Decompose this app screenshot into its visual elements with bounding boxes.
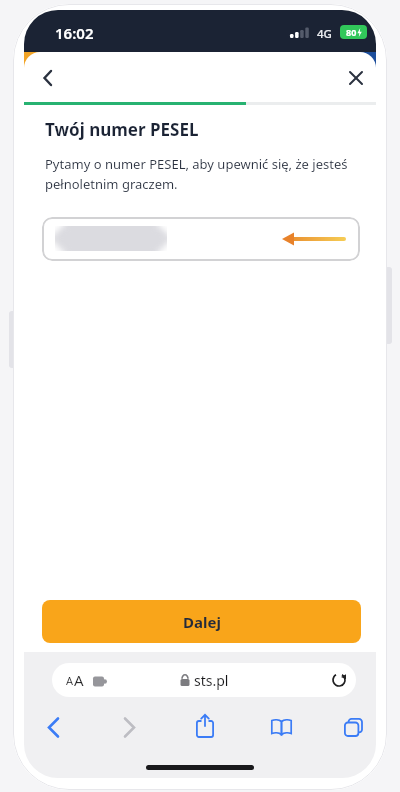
button[interactable]: Dalej xyxy=(42,600,361,643)
staticText: sts.pl xyxy=(194,671,229,690)
button[interactable] xyxy=(340,714,366,740)
button[interactable] xyxy=(42,217,360,261)
staticText: Dalej xyxy=(183,612,221,632)
staticText: 16:02 xyxy=(55,23,94,43)
button[interactable] xyxy=(192,710,218,742)
button[interactable]: A xyxy=(52,663,356,697)
button[interactable] xyxy=(36,66,60,90)
button[interactable] xyxy=(40,714,66,740)
staticText: Pytamy o numer PESEL, aby upewnić się, ż… xyxy=(45,155,348,193)
staticText: 80 xyxy=(346,26,357,38)
button[interactable] xyxy=(268,714,294,740)
staticText: A xyxy=(66,673,74,688)
button[interactable] xyxy=(116,714,142,740)
staticText: 4G xyxy=(317,26,332,42)
staticText: Twój numer PESEL xyxy=(45,118,199,141)
staticText: A xyxy=(74,670,84,690)
button[interactable] xyxy=(344,66,368,90)
